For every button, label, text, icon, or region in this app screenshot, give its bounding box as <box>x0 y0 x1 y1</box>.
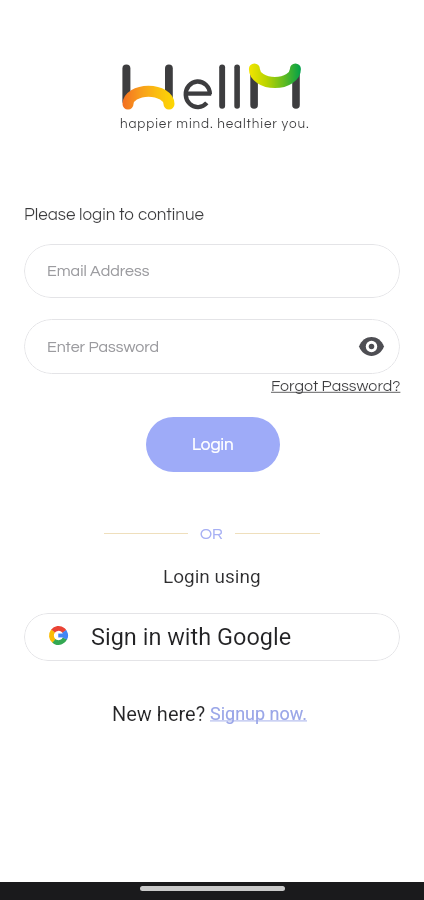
staticText: Login using <box>163 565 261 587</box>
staticText: Enter Password <box>47 339 160 355</box>
button[interactable]: Email Address <box>24 244 400 298</box>
button[interactable]: Sign in with Google <box>24 613 400 661</box>
staticText: New here? <box>112 702 206 725</box>
button[interactable]: Enter Password <box>24 319 400 374</box>
button[interactable]: Login <box>146 417 280 472</box>
staticText: OR <box>200 526 223 542</box>
staticText: Login <box>192 436 234 454</box>
button[interactable]: Show password <box>359 334 384 359</box>
button[interactable]: Forgot Password? <box>271 378 401 394</box>
staticText: Sign in with Google <box>91 623 292 651</box>
staticText: happier mind. healthier you. <box>120 117 310 131</box>
staticText: Please login to continue <box>24 206 205 224</box>
button[interactable]: Signup now. <box>210 703 307 724</box>
staticText: Email Address <box>47 263 150 279</box>
